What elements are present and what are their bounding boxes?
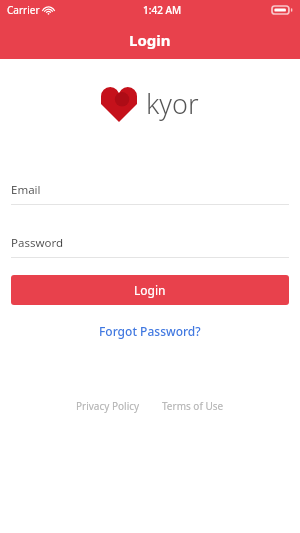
button[interactable]: Forgot Password? [91,320,209,342]
staticText: Carrier [7,3,40,17]
staticText: Login [129,30,171,50]
other: Wi-Fi [43,5,54,16]
button[interactable]: Privacy Policy [71,396,145,416]
button[interactable]: Login [11,275,289,305]
staticText: kyor [146,85,199,122]
other: kyor logo [101,86,137,122]
staticText: Terms of Use [162,399,224,413]
staticText: 1:42 AM [143,3,182,17]
button[interactable]: Email [0,182,300,205]
staticText: Login [134,282,166,298]
staticText: Privacy Policy [76,399,140,413]
button[interactable]: Password [0,235,300,258]
staticText: Forgot Password? [99,323,201,339]
button[interactable]: Terms of Use [157,396,229,416]
staticText: Email [11,182,41,198]
other: Battery [271,5,293,15]
staticText: Password [11,235,64,251]
